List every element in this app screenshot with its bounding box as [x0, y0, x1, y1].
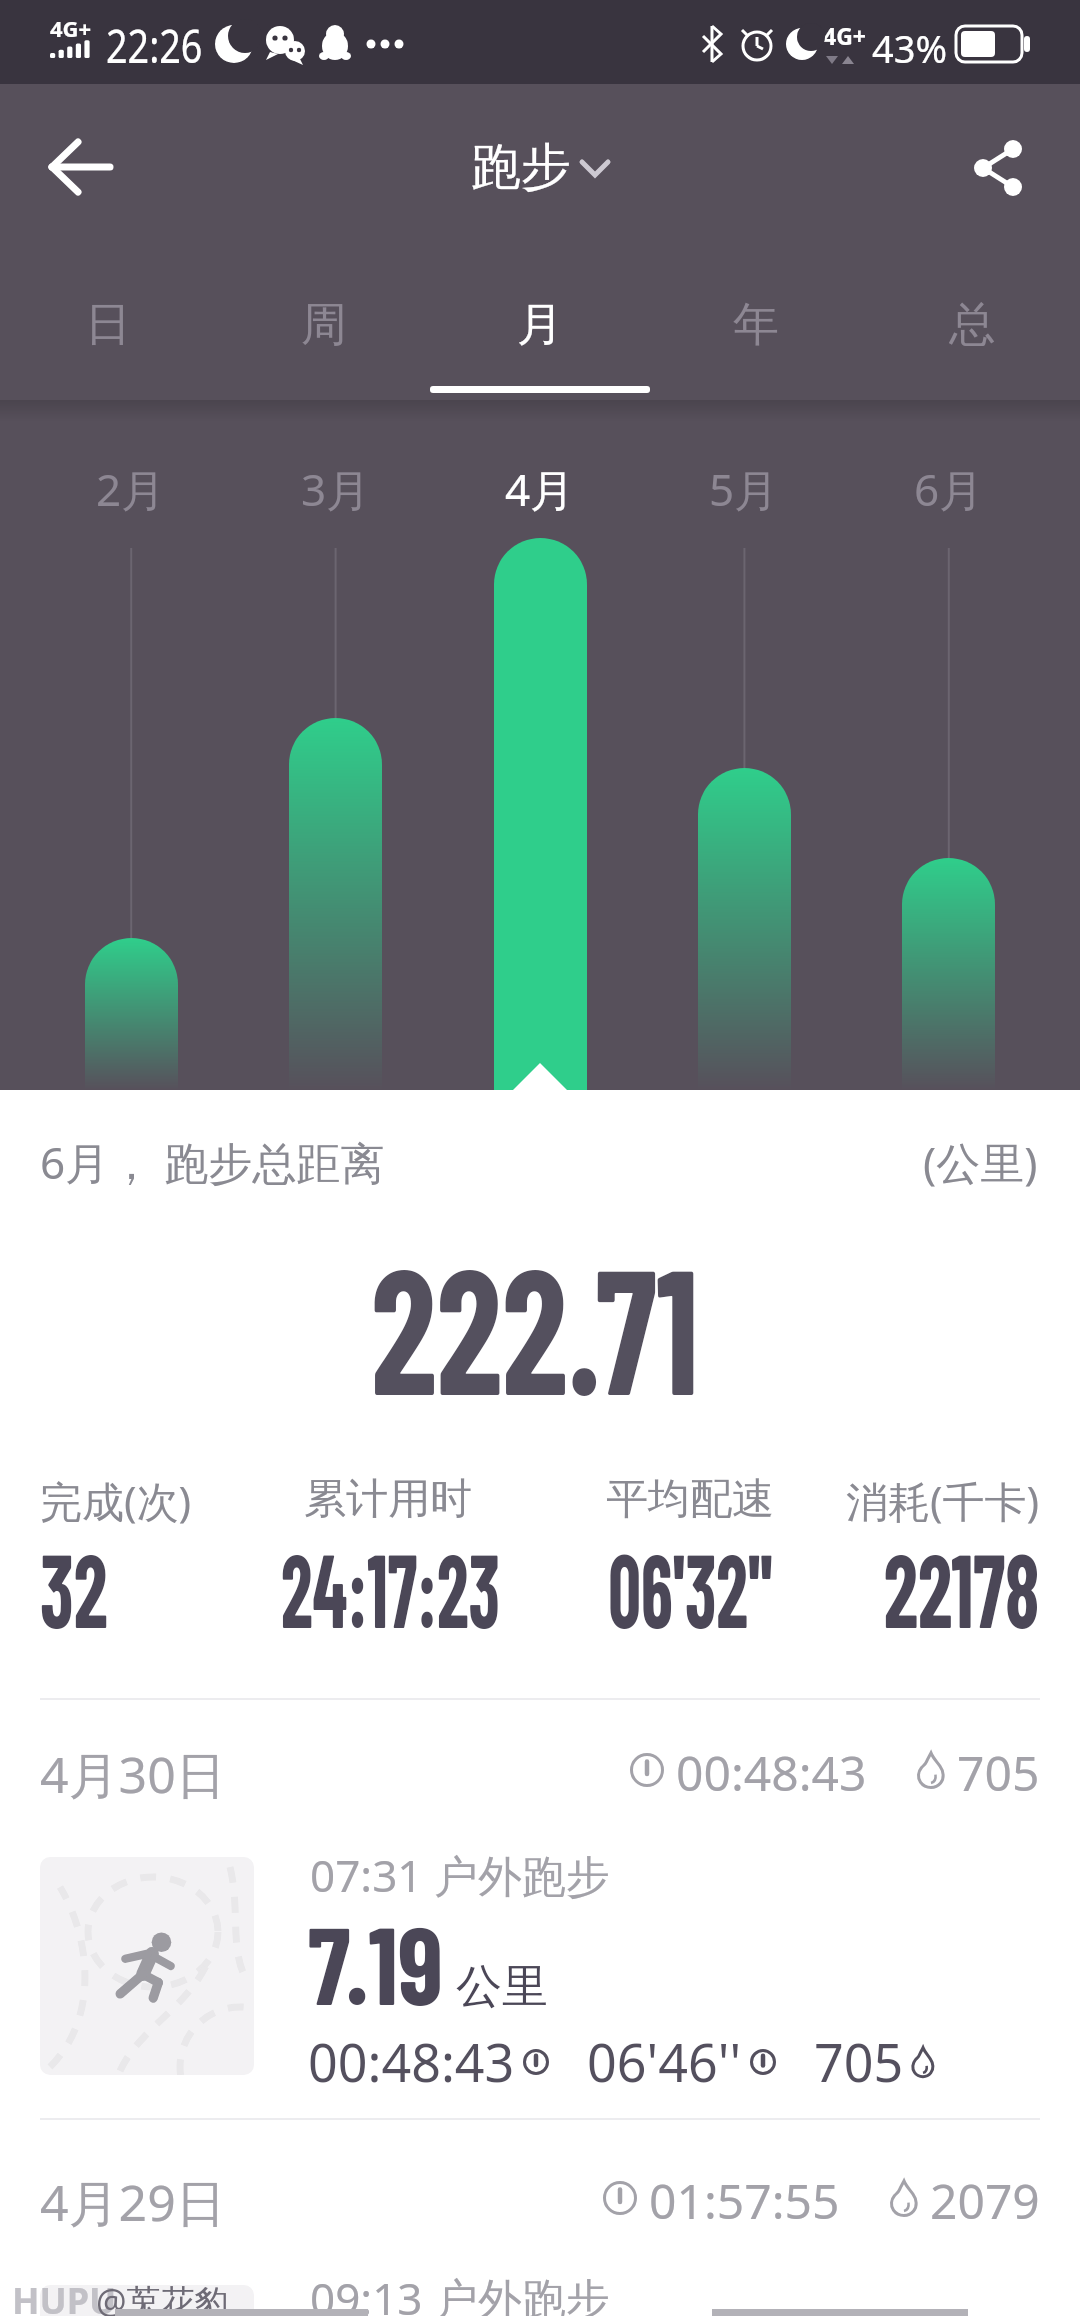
staticText: 4G+ [823, 20, 866, 51]
button[interactable]: 年 [676, 250, 836, 400]
button[interactable]: 日 [28, 250, 188, 400]
button[interactable]: 总 [892, 250, 1052, 400]
button[interactable]: 周 [244, 250, 404, 400]
staticText: 消耗(千卡) [846, 1472, 1040, 1526]
staticText: 4月 [505, 459, 575, 513]
staticText: 22178 [884, 1525, 1040, 1635]
staticText: 平均配速 [606, 1473, 774, 1526]
staticText: 4月29日 [40, 2168, 226, 2228]
button[interactable]: 月 [460, 250, 620, 400]
staticText: 01:57:55 [649, 2168, 840, 2228]
button[interactable] [20, 117, 130, 217]
button[interactable]: 07:31 户外跑步 [0, 1840, 1080, 2090]
staticText: (公里) [923, 1132, 1038, 1188]
staticText: 完成(次) [40, 1472, 192, 1526]
staticText: 222.71 [371, 1219, 699, 1395]
staticText: 705 [814, 2026, 904, 2097]
button[interactable]: 4月30日 [0, 1740, 1080, 1800]
staticText: 06'46'' [587, 2026, 742, 2097]
staticText: 705 [957, 1740, 1040, 1800]
staticText: 2079 [930, 2168, 1040, 2228]
staticText: 32 [40, 1525, 108, 1635]
staticText: 3月 [301, 459, 371, 513]
staticText: 累计用时 [304, 1473, 472, 1526]
staticText: 6月， 跑步总距离 [40, 1132, 385, 1188]
staticText: 总 [949, 296, 995, 354]
staticText: HUPU [12, 2276, 117, 2316]
staticText: 5月 [709, 459, 779, 513]
staticText: 公里 [456, 1958, 548, 2016]
staticText: 22:26 [106, 14, 203, 77]
staticText: 4G+ [50, 13, 92, 43]
button[interactable]: 4月29日 [0, 2168, 1080, 2228]
staticText: 跑步 [471, 136, 571, 199]
staticText: 00:48:43 [308, 2026, 515, 2097]
staticText: 2月 [96, 459, 166, 513]
staticText: 7.19 [308, 1897, 443, 1999]
staticText: 06'32'' [608, 1525, 773, 1635]
staticText: 6月 [914, 459, 984, 513]
staticText: 24:17:23 [281, 1525, 500, 1635]
staticText: @莵花豹 [96, 2278, 229, 2316]
staticText: 00:48:43 [676, 1740, 867, 1800]
staticText: 日 [85, 296, 131, 354]
staticText: 月 [517, 296, 563, 354]
staticText: 4月30日 [40, 1740, 226, 1800]
staticText: 年 [733, 296, 779, 354]
staticText: 周 [301, 296, 347, 354]
button[interactable]: 跑步 [471, 136, 609, 199]
staticText: 07:31 户外跑步 [310, 1845, 610, 1905]
staticText: 09:13 户外跑步 [310, 2268, 610, 2316]
button[interactable] [950, 129, 1050, 229]
staticText: 43% [872, 22, 948, 74]
